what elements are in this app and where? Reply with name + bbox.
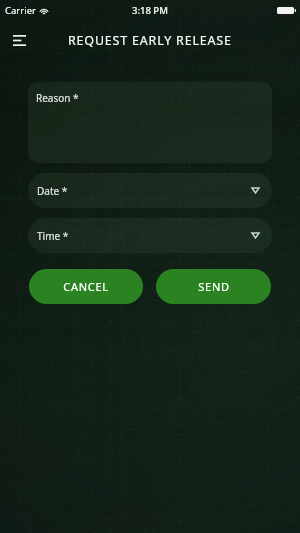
staticText: SEND bbox=[198, 279, 230, 294]
button[interactable]: SEND bbox=[156, 269, 271, 304]
button[interactable]: Reason * bbox=[28, 82, 272, 163]
button[interactable]: Menu bbox=[6, 27, 32, 53]
staticText: Reason * bbox=[36, 91, 79, 105]
staticText: CANCEL bbox=[63, 279, 109, 294]
staticText: REQUEST EARLY RELEASE bbox=[68, 32, 232, 49]
button[interactable]: Date * bbox=[28, 173, 272, 208]
staticText: Carrier bbox=[5, 4, 36, 17]
staticText: Time * bbox=[37, 229, 69, 243]
button[interactable]: CANCEL bbox=[29, 269, 143, 304]
staticText: Date * bbox=[37, 184, 68, 198]
staticText: 3:18 PM bbox=[132, 4, 168, 17]
button[interactable]: Time * bbox=[28, 218, 272, 253]
